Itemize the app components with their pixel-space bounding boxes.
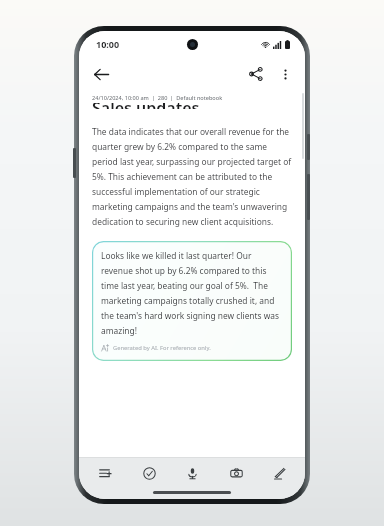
button[interactable]: More options xyxy=(271,60,299,88)
staticText: Sales updates xyxy=(92,103,200,109)
button[interactable]: Draw xyxy=(262,459,296,487)
button[interactable]: Share xyxy=(241,59,271,89)
button[interactable]: Back xyxy=(86,59,116,89)
staticText: 10:00 xyxy=(96,38,120,50)
staticText: The data indicates that our overall reve… xyxy=(92,126,292,227)
staticText: Looks like we killed it last quarter! Ou… xyxy=(101,250,283,336)
staticText: Generated by AI. For reference only. xyxy=(113,344,211,352)
staticText: 24/10/2024, 10:00 am | 280 | Default not… xyxy=(92,94,223,102)
button[interactable]: Checklist xyxy=(132,459,166,487)
button[interactable]: Voice recording xyxy=(175,459,209,487)
button[interactable]: Camera xyxy=(219,459,253,487)
button[interactable]: Looks like we killed it last quarter! Ou… xyxy=(92,241,292,361)
button[interactable]: Add list xyxy=(88,459,122,487)
